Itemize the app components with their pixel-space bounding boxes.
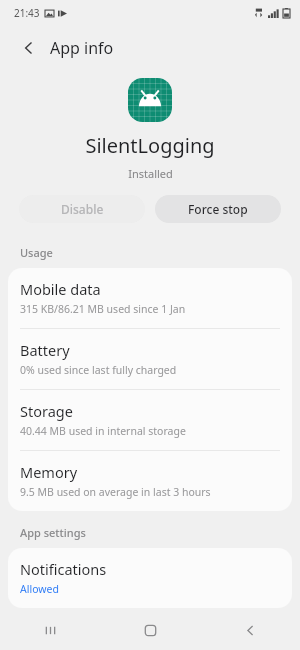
- staticText: Allowed: [20, 582, 59, 596]
- staticText: 40.44 MB used in internal storage: [20, 424, 186, 438]
- button[interactable]: Home: [100, 610, 200, 650]
- staticText: 21:43: [14, 6, 40, 20]
- button[interactable]: Disable: [19, 195, 145, 223]
- staticText: 0% used since last fully charged: [20, 363, 177, 377]
- button[interactable]: Recents: [0, 610, 100, 650]
- staticText: App info: [50, 37, 114, 59]
- button[interactable]: Notifications: [8, 548, 292, 608]
- button[interactable]: Memory: [8, 451, 292, 511]
- staticText: Usage: [20, 245, 53, 260]
- staticText: Mobile data: [20, 279, 101, 299]
- staticText: Force stop: [188, 201, 248, 217]
- button[interactable]: Storage: [8, 390, 292, 450]
- button[interactable]: Battery: [8, 329, 292, 389]
- staticText: App settings: [20, 525, 86, 540]
- button[interactable]: Mobile data: [8, 268, 292, 328]
- staticText: Disable: [61, 201, 104, 217]
- staticText: Notifications: [20, 559, 107, 579]
- staticText: SilentLogging: [85, 132, 215, 159]
- button[interactable]: Back: [200, 610, 300, 650]
- button[interactable]: Back: [14, 33, 44, 63]
- staticText: Memory: [20, 462, 78, 482]
- staticText: 9.5 MB used on average in last 3 hours: [20, 485, 211, 499]
- staticText: Battery: [20, 340, 70, 360]
- staticText: Installed: [128, 166, 173, 181]
- button[interactable]: Force stop: [155, 195, 281, 223]
- staticText: Storage: [20, 401, 73, 421]
- staticText: 315 KB/86.21 MB used since 1 Jan: [20, 302, 186, 316]
